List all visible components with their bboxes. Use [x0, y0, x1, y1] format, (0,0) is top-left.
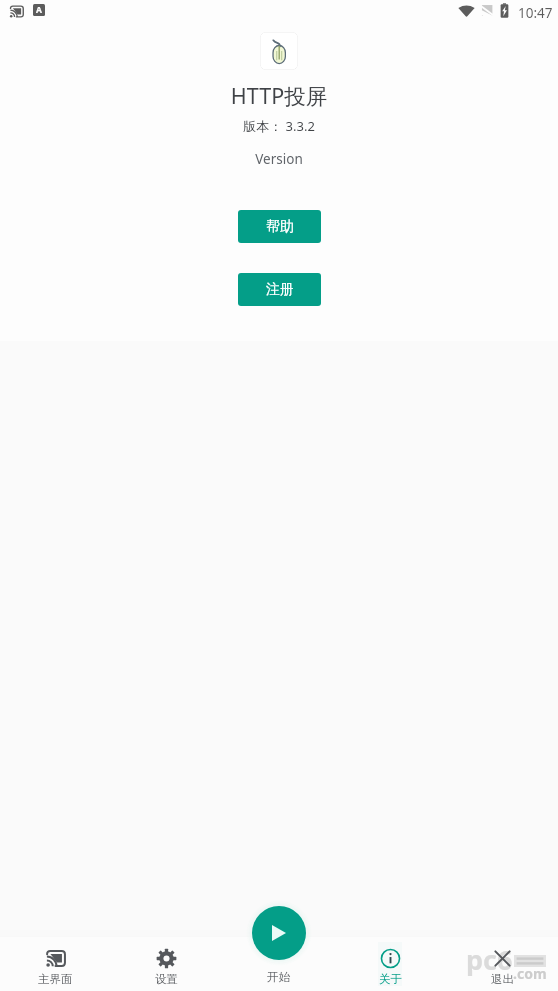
- staticText: 注册: [266, 281, 294, 299]
- staticText: 开始: [267, 970, 290, 984]
- staticText: pc6: [466, 941, 513, 978]
- staticText: 10:47: [518, 4, 553, 22]
- button[interactable]: 设置: [111, 937, 222, 991]
- staticText: 设置: [155, 972, 178, 986]
- staticText: 关于: [379, 972, 402, 986]
- button[interactable]: 开始: [222, 937, 334, 991]
- button[interactable]: 关于: [334, 937, 446, 991]
- staticText: 退出: [491, 972, 514, 986]
- staticText: .com: [513, 964, 547, 983]
- staticText: 版本： 3.3.2: [0, 117, 558, 135]
- button[interactable]: 注册: [238, 273, 321, 306]
- staticText: Version: [0, 150, 558, 168]
- button[interactable]: 帮助: [238, 210, 321, 243]
- button[interactable]: 退出: [446, 937, 558, 991]
- staticText: 主界面: [38, 972, 73, 986]
- staticText: A: [36, 4, 42, 16]
- button[interactable]: 开始: [252, 906, 306, 960]
- staticText: 帮助: [266, 218, 294, 236]
- button[interactable]: 主界面: [0, 937, 111, 991]
- staticText: HTTP投屏: [0, 81, 558, 110]
